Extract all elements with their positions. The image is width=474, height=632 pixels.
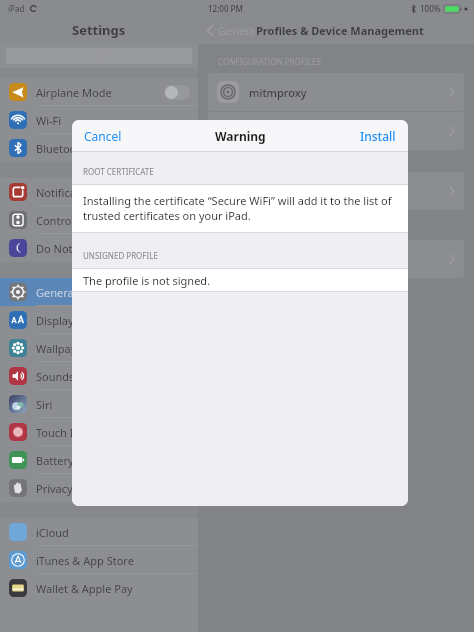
staticText: Install [360, 128, 396, 144]
staticText: General [218, 23, 259, 38]
staticText: Privacy [36, 481, 73, 496]
button[interactable]: ers Ltd. [208, 172, 464, 210]
staticText: Notifications [36, 185, 102, 200]
staticText: ers Ltd. [313, 184, 353, 199]
button[interactable] [208, 240, 464, 278]
button[interactable]: iCloud [0, 518, 198, 546]
button[interactable] [208, 112, 464, 150]
button[interactable]: Airplane Mode [0, 78, 198, 106]
staticText: The profile is not signed. [83, 273, 211, 288]
staticText: Touch ID & Passcode [36, 425, 144, 440]
staticText: Settings [72, 21, 126, 39]
staticText: CONFIGURATION PROFILES [218, 56, 321, 67]
staticText: ROOT CERTIFICATE [83, 166, 154, 177]
staticText: Display & Brightness [36, 313, 143, 328]
staticText: Bluetooth [36, 141, 88, 156]
button[interactable]: Do Not Disturb [0, 234, 198, 262]
button[interactable]: Touch ID & Passcode [0, 418, 198, 446]
button[interactable]: Notifications [0, 178, 198, 206]
button[interactable]: General [206, 23, 259, 38]
staticText: iCloud [36, 525, 69, 540]
staticText: Do Not Disturb [36, 241, 114, 256]
staticText: 100% [420, 3, 441, 14]
button[interactable]: Siri [0, 390, 198, 418]
staticText: Wallpaper [36, 341, 89, 356]
staticText: Warning [215, 128, 266, 144]
staticText: Cancel [84, 128, 122, 144]
button[interactable]: mitmproxy [208, 73, 464, 111]
staticText: iTunes & App Store [36, 553, 134, 568]
button[interactable]: Privacy [0, 474, 198, 502]
staticText: Sounds [36, 369, 75, 384]
staticText: Wi-Fi [36, 113, 62, 128]
button[interactable]: Wi-Fi [0, 106, 198, 134]
staticText: Airplane Mode [36, 85, 112, 100]
staticText: UNSIGNED PROFILE [83, 250, 158, 261]
staticText: Profiles & Device Management [256, 23, 424, 38]
staticText: Control Center [36, 213, 112, 228]
button[interactable]: Wallpaper [0, 334, 198, 362]
button[interactable]: Bluetooth [0, 134, 198, 162]
button[interactable]: Display & Brightness [0, 306, 198, 334]
button[interactable]: Battery [0, 446, 198, 474]
staticText: Wallet & Apple Pay [36, 581, 133, 596]
button[interactable]: iTunes & App Store [0, 546, 198, 574]
button[interactable]: Control Center [0, 206, 198, 234]
staticText: mitmproxy [249, 85, 307, 100]
staticText: 12:00 PM [208, 3, 243, 14]
staticText: Siri [36, 397, 53, 412]
button[interactable]: General [0, 278, 198, 306]
button[interactable]: Cancel [84, 120, 122, 151]
button[interactable]: Wallet & Apple Pay [0, 574, 198, 602]
staticText: General [36, 285, 77, 300]
staticText: iPad [8, 3, 25, 14]
staticText: Installing the certificate “Secure WiFi”… [83, 193, 394, 223]
button[interactable]: Install [360, 120, 396, 151]
staticText: Battery [36, 453, 74, 468]
button[interactable]: Sounds [0, 362, 198, 390]
